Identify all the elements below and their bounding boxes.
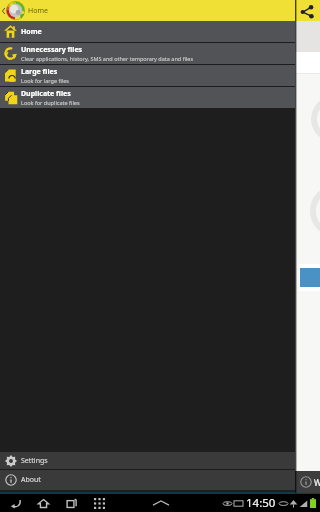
staticText: Large files bbox=[21, 67, 58, 77]
staticText: Settings bbox=[21, 456, 48, 466]
staticText: About bbox=[21, 475, 41, 485]
button[interactable]: About bbox=[0, 470, 295, 490]
button[interactable]: Recent apps bbox=[57, 494, 85, 512]
staticText: Clear applications, history, SMS and oth… bbox=[21, 55, 194, 62]
staticText: W bbox=[314, 477, 320, 488]
button[interactable]: Hide navigation bar bbox=[147, 494, 175, 512]
button[interactable]: Duplicate files bbox=[0, 87, 295, 108]
staticText: Look for duplicate files bbox=[21, 99, 80, 106]
button[interactable]: Back bbox=[1, 494, 29, 512]
button[interactable]: Unnecessary files bbox=[0, 43, 295, 64]
button[interactable]: Share bbox=[297, 1, 316, 20]
button[interactable]: Home bbox=[0, 21, 295, 42]
staticText: Home bbox=[21, 27, 42, 37]
staticText: Unnecessary files bbox=[21, 45, 83, 55]
button[interactable]: Large files bbox=[0, 65, 295, 86]
button[interactable]: Home bbox=[29, 494, 57, 512]
button[interactable]: All apps bbox=[85, 494, 113, 512]
staticText: Duplicate files bbox=[21, 89, 71, 99]
button[interactable]: Settings bbox=[0, 452, 295, 469]
staticText: 14:50 bbox=[246, 495, 276, 511]
staticText: Home bbox=[28, 6, 48, 16]
staticText: Look for large files bbox=[21, 77, 69, 84]
